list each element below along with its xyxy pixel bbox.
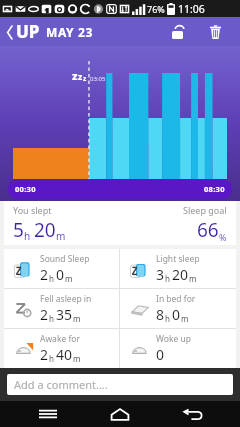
staticText: z	[72, 68, 78, 83]
button[interactable]: Sound Sleep	[4, 249, 119, 288]
staticText: 66	[197, 217, 219, 243]
staticText: 0	[56, 265, 65, 284]
staticText: 11:06	[178, 2, 205, 16]
staticText: 5	[13, 217, 24, 243]
staticText: m	[65, 273, 73, 284]
staticText: In bed for	[156, 293, 196, 305]
staticText: h	[49, 313, 54, 324]
staticText: m	[181, 313, 189, 324]
button[interactable]: Woke up	[120, 329, 236, 368]
staticText: %	[219, 231, 227, 243]
staticText: h	[49, 353, 54, 364]
button[interactable]: Back	[168, 401, 218, 427]
staticText: 2	[40, 265, 49, 284]
staticText: h	[165, 313, 170, 324]
staticText: z	[83, 74, 87, 83]
button[interactable]: Light sleep	[120, 249, 236, 288]
staticText: 00:30	[15, 184, 36, 194]
staticText: 35	[56, 305, 73, 324]
staticText: m	[73, 353, 81, 364]
staticText: h	[165, 273, 170, 284]
staticText: 03:05	[90, 75, 106, 83]
staticText: 40	[56, 345, 73, 364]
staticText: Light sleep	[156, 253, 200, 265]
button[interactable]: Add a comment....	[7, 374, 233, 395]
staticText: MAY 23	[46, 24, 93, 40]
button[interactable]: Back	[4, 21, 16, 43]
staticText: UP	[16, 20, 40, 43]
staticText: m	[73, 313, 81, 324]
button[interactable]: Delete	[202, 19, 228, 45]
staticText: 0	[172, 305, 181, 324]
staticText: 0	[156, 345, 165, 364]
staticText: 76%	[147, 3, 165, 15]
button[interactable]: Home	[95, 401, 145, 427]
staticText: h	[24, 229, 31, 243]
staticText: Add a comment....	[14, 377, 108, 392]
staticText: You slept	[13, 204, 52, 216]
staticText: Sound Sleep	[40, 253, 90, 265]
staticText: m	[189, 273, 197, 284]
button[interactable]: Fell asleep in	[4, 289, 119, 328]
staticText: 2	[40, 345, 49, 364]
staticText: Woke up	[156, 333, 191, 345]
staticText: Fell asleep in	[40, 293, 92, 305]
button[interactable]: Privacy lock	[164, 19, 190, 45]
staticText: Sleep goal	[183, 204, 227, 216]
staticText: Awake for	[40, 333, 81, 345]
staticText: 08:30	[204, 184, 225, 194]
staticText: m	[56, 229, 66, 243]
button[interactable]: Menu	[23, 401, 73, 427]
staticText: 20	[172, 265, 189, 284]
staticText: 8	[156, 305, 165, 324]
button[interactable]: Awake for	[4, 329, 119, 368]
staticText: 3	[156, 265, 165, 284]
staticText: 2	[40, 305, 49, 324]
staticText: h	[49, 273, 54, 284]
button[interactable]: In bed for	[120, 289, 236, 328]
staticText: 20	[34, 217, 56, 243]
button[interactable]: You slept	[4, 201, 236, 245]
staticText: z	[78, 71, 83, 83]
